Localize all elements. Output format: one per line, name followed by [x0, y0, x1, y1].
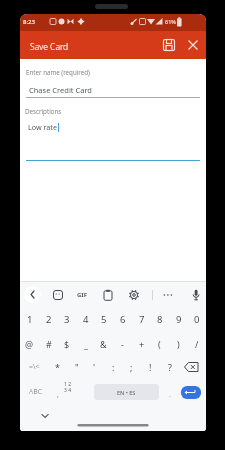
staticText: Chase Credit Card: [29, 85, 92, 95]
staticText: !: [149, 361, 152, 373]
button[interactable]: 6: [113, 308, 132, 330]
button[interactable]: _: [76, 333, 95, 355]
staticText: $: [64, 338, 70, 350]
staticText: .: [169, 388, 171, 399]
button[interactable]: 1: [20, 308, 39, 330]
button[interactable]: *: [48, 356, 67, 378]
staticText: ABC: [29, 387, 43, 397]
button[interactable]: :: [104, 356, 123, 378]
button[interactable]: GIF: [77, 291, 87, 299]
button[interactable]: [100, 287, 116, 303]
button[interactable]: !: [141, 356, 160, 378]
staticText: =\<: [29, 362, 40, 372]
staticText: ?: [168, 361, 172, 373]
button[interactable]: [24, 286, 41, 303]
staticText: *: [55, 361, 60, 373]
staticText: ): [177, 338, 180, 350]
staticText: ": [75, 361, 79, 373]
staticText: 9: [176, 313, 182, 326]
button[interactable]: [181, 386, 201, 399]
button[interactable]: ABC: [26, 381, 45, 403]
staticText: 1 2: [64, 381, 72, 388]
button[interactable]: (: [150, 333, 169, 355]
staticText: (: [158, 338, 161, 350]
staticText: Descriptions: [25, 107, 62, 115]
button[interactable]: ): [169, 333, 188, 355]
staticText: ': [93, 361, 96, 373]
button[interactable]: 2: [39, 308, 58, 330]
staticText: Save Card: [30, 41, 69, 53]
button[interactable]: =\<: [25, 356, 44, 378]
button[interactable]: [50, 287, 66, 303]
staticText: 4: [83, 313, 89, 326]
staticText: ,: [57, 388, 59, 399]
staticText: @: [25, 338, 34, 350]
button[interactable]: -: [113, 333, 132, 355]
staticText: &: [100, 338, 107, 350]
button[interactable]: ,: [48, 382, 67, 404]
staticText: EN • ES: [117, 389, 136, 396]
button[interactable]: [188, 287, 204, 303]
button[interactable]: 8: [150, 308, 169, 330]
button[interactable]: +: [132, 333, 151, 355]
staticText: /: [195, 338, 199, 350]
button[interactable]: [159, 35, 179, 55]
staticText: +: [139, 338, 145, 350]
staticText: -: [121, 338, 124, 350]
staticText: 8: [157, 313, 163, 326]
button[interactable]: ?: [160, 356, 179, 378]
button[interactable]: 9: [169, 308, 188, 330]
button[interactable]: 4: [76, 308, 95, 330]
button[interactable]: @: [20, 333, 39, 355]
staticText: #: [46, 338, 52, 350]
button[interactable]: &: [94, 333, 113, 355]
button[interactable]: 5: [94, 308, 113, 330]
staticText: 3 4: [64, 387, 72, 394]
staticText: 1: [27, 313, 33, 326]
button[interactable]: ': [85, 356, 104, 378]
staticText: 2: [46, 313, 52, 326]
staticText: 5: [101, 313, 107, 326]
staticText: 7: [139, 313, 145, 326]
staticText: :: [112, 361, 115, 373]
staticText: ;: [130, 361, 133, 373]
staticText: 61%: [165, 18, 176, 25]
button[interactable]: EN • ES: [94, 384, 159, 400]
button[interactable]: 3: [57, 308, 76, 330]
button[interactable]: $: [57, 333, 76, 355]
staticText: Enter name (required): [26, 68, 90, 76]
button[interactable]: /: [187, 333, 206, 355]
button[interactable]: [126, 287, 142, 303]
button[interactable]: [183, 35, 203, 55]
button[interactable]: [160, 287, 176, 303]
staticText: 3: [64, 313, 70, 326]
staticText: 8:23: [23, 18, 35, 26]
button[interactable]: 0: [187, 308, 206, 330]
staticText: Low rate: [28, 122, 57, 132]
button[interactable]: #: [39, 333, 58, 355]
button[interactable]: ": [67, 356, 86, 378]
staticText: 0: [194, 313, 200, 326]
button[interactable]: [182, 359, 202, 375]
staticText: _: [84, 338, 88, 350]
button[interactable]: ;: [122, 356, 141, 378]
staticText: 6: [120, 313, 126, 326]
button[interactable]: 7: [132, 308, 151, 330]
